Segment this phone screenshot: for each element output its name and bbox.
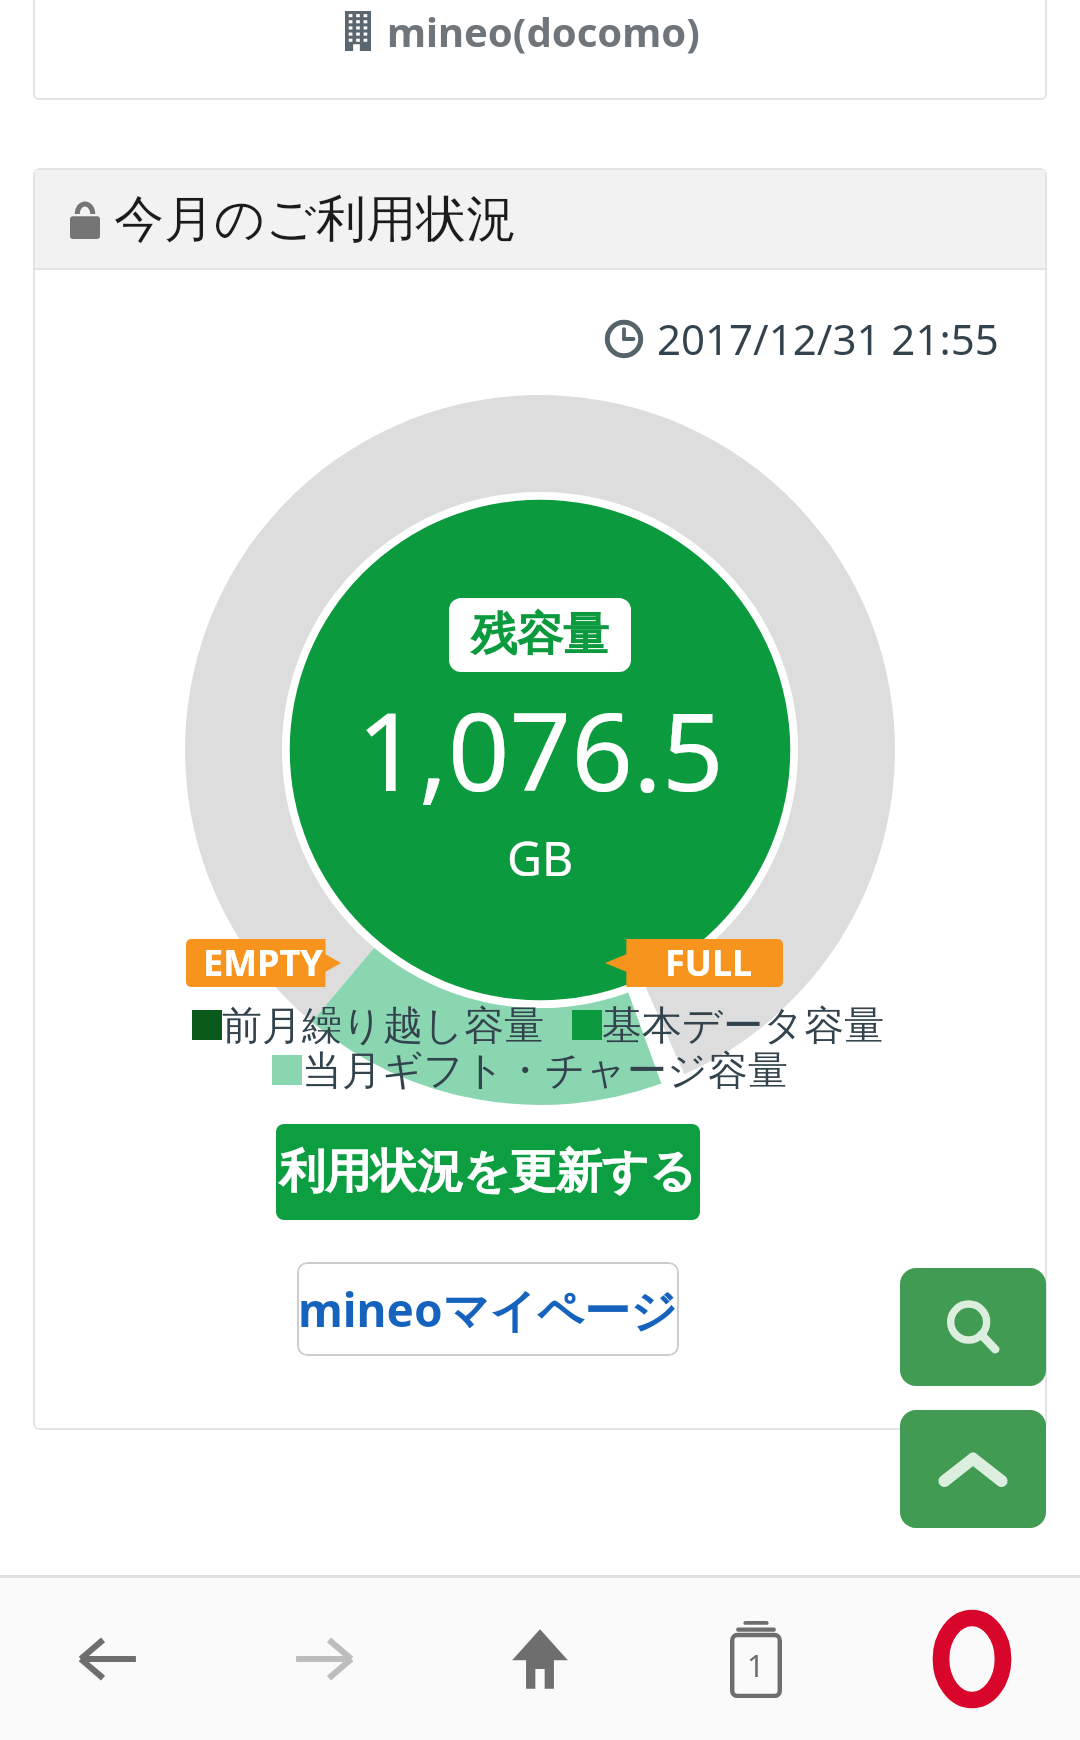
staticText: GB <box>507 825 574 890</box>
staticText: mineoマイページ <box>298 1278 678 1341</box>
button[interactable]: Back <box>0 1578 216 1740</box>
staticText: 当月ギフト・チャージ容量 <box>302 1045 788 1095</box>
staticText: 2017/12/31 21:55 <box>657 310 999 367</box>
button[interactable]: FULL <box>605 938 783 987</box>
button[interactable]: Home <box>432 1578 648 1740</box>
button[interactable]: mineoマイページ <box>297 1262 679 1356</box>
button[interactable]: Search <box>900 1268 1046 1386</box>
staticText: FULL <box>665 938 753 987</box>
button[interactable]: mineo(docomo) <box>345 4 700 58</box>
button[interactable]: Forward <box>216 1578 432 1740</box>
button[interactable]: 利用状況を更新する <box>276 1124 700 1220</box>
button[interactable]: Scroll to top <box>900 1410 1046 1528</box>
staticText: 利用状況を更新する <box>279 1143 697 1201</box>
staticText: 1,076.5 <box>357 676 724 823</box>
button[interactable]: Opera menu <box>864 1578 1080 1740</box>
staticText: 1 <box>747 1645 765 1686</box>
button[interactable]: EMPTY <box>186 938 341 987</box>
staticText: 残容量 <box>471 606 609 664</box>
staticText: 今月のご利用状況 <box>114 188 517 251</box>
staticText: EMPTY <box>203 938 323 987</box>
button[interactable]: Tabs <box>648 1578 864 1740</box>
staticText: 前月繰り越し容量 <box>222 1000 544 1050</box>
staticText: 基本データ容量 <box>602 1000 884 1050</box>
button[interactable]: 今月のご利用状況 <box>70 170 517 269</box>
staticText: mineo(docomo) <box>387 4 700 58</box>
